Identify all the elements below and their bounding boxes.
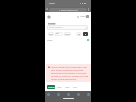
staticText: Playground (48, 24, 56, 26)
button[interactable]: Tab (47, 93, 50, 96)
button[interactable]: Tabs (46, 8, 48, 10)
button[interactable]: View code (55, 32, 63, 36)
button[interactable]: Save (73, 86, 78, 89)
button[interactable]: Tab (87, 93, 90, 96)
button[interactable]: Settings (76, 32, 81, 36)
staticText: Share (65, 33, 70, 35)
staticText: Submit (48, 86, 55, 89)
staticText: Load a preset... (49, 26, 64, 29)
button[interactable]: Share (64, 32, 71, 36)
button[interactable]: Clear (57, 86, 62, 89)
staticText: Playground (48, 23, 56, 25)
button[interactable]: Tab (77, 93, 80, 96)
button[interactable]: Tab (57, 93, 60, 96)
button[interactable]: Run (83, 32, 88, 36)
button[interactable]: hello.opener.com (49, 8, 87, 12)
staticText: 10:15 (49, 2, 55, 5)
button[interactable]: Load a preset... (47, 25, 88, 30)
staticText: hello.opener.com (61, 9, 78, 12)
staticText: Log in (80, 15, 87, 18)
staticText: Start (49, 33, 54, 35)
button[interactable]: Settings (47, 15, 51, 19)
staticText: View code (55, 32, 63, 36)
button[interactable]: Log in (77, 15, 87, 18)
button[interactable]: Submit (47, 85, 55, 89)
button[interactable]: Copy (65, 86, 70, 89)
staticText: You've reached your usage limit. Visit y… (51, 66, 89, 81)
button[interactable]: Menu (86, 15, 89, 18)
button[interactable]: Start (48, 32, 54, 36)
staticText: Mode (47, 39, 53, 42)
button[interactable]: Tab (67, 93, 70, 96)
